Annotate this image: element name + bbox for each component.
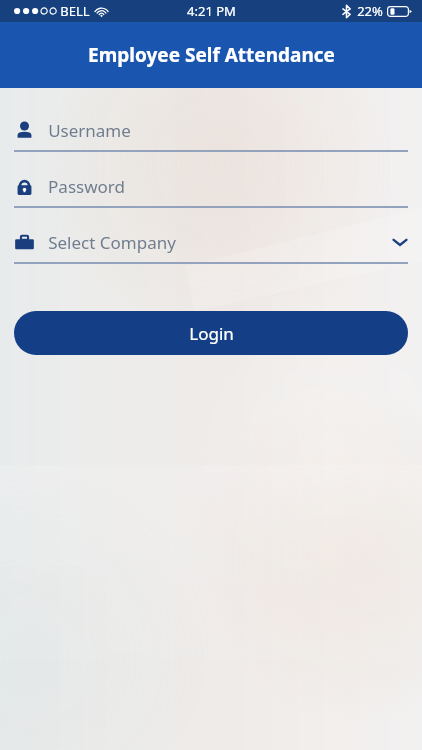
staticText: Employee Self Attendance	[88, 42, 335, 68]
button[interactable]: Username	[14, 110, 408, 152]
other: Open company list	[392, 236, 408, 248]
staticText: Select Company	[48, 231, 176, 254]
staticText: BELL	[60, 2, 90, 20]
staticText: 4:21 PM	[187, 2, 236, 20]
staticText: 22%	[357, 2, 383, 20]
button[interactable]: Select Company	[14, 222, 408, 264]
button[interactable]: Login	[14, 311, 408, 355]
button[interactable]: Password	[14, 166, 408, 208]
staticText: Login	[189, 322, 234, 345]
staticText: Username	[48, 119, 131, 142]
staticText: Password	[48, 175, 125, 198]
